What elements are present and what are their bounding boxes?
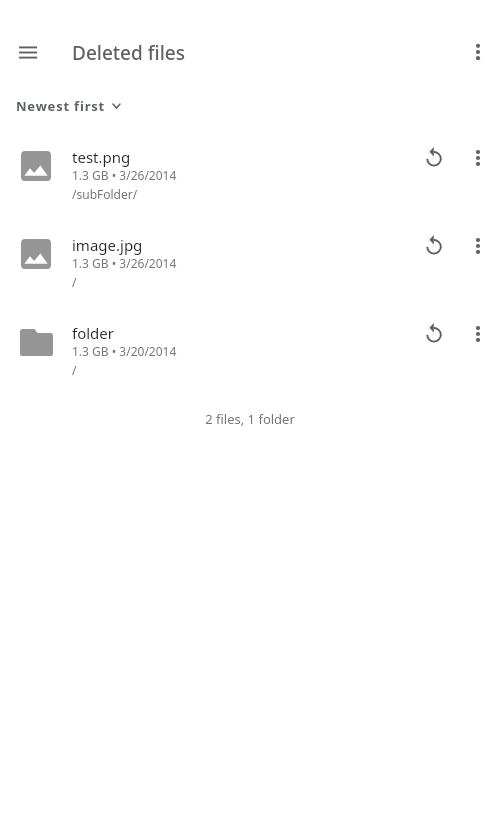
- button[interactable]: Open navigation drawer: [4, 28, 52, 76]
- staticText: /: [72, 362, 77, 378]
- button[interactable]: test.png: [0, 132, 500, 220]
- staticText: /subFolder/: [72, 186, 138, 202]
- staticText: Newest first: [16, 97, 106, 115]
- staticText: 2 files, 1 folder: [205, 410, 295, 428]
- staticText: image.jpg: [72, 235, 143, 255]
- staticText: 1.3 GB • 3/26/2014: [72, 167, 177, 183]
- button[interactable]: Restore: [410, 221, 458, 269]
- button[interactable]: Newest first: [0, 92, 500, 132]
- staticText: 1.3 GB • 3/20/2014: [72, 343, 177, 359]
- button[interactable]: folder: [0, 308, 500, 396]
- button[interactable]: More options: [454, 222, 500, 270]
- staticText: Deleted files: [72, 40, 185, 66]
- staticText: test.png: [72, 147, 131, 167]
- button[interactable]: More options: [454, 134, 500, 182]
- staticText: folder: [72, 323, 114, 343]
- staticText: 1.3 GB • 3/26/2014: [72, 255, 177, 271]
- button[interactable]: More options: [454, 28, 500, 76]
- button[interactable]: Restore: [410, 133, 458, 181]
- button[interactable]: image.jpg: [0, 220, 500, 308]
- button[interactable]: Restore: [410, 309, 458, 357]
- button[interactable]: More options: [454, 310, 500, 358]
- staticText: /: [72, 274, 77, 290]
